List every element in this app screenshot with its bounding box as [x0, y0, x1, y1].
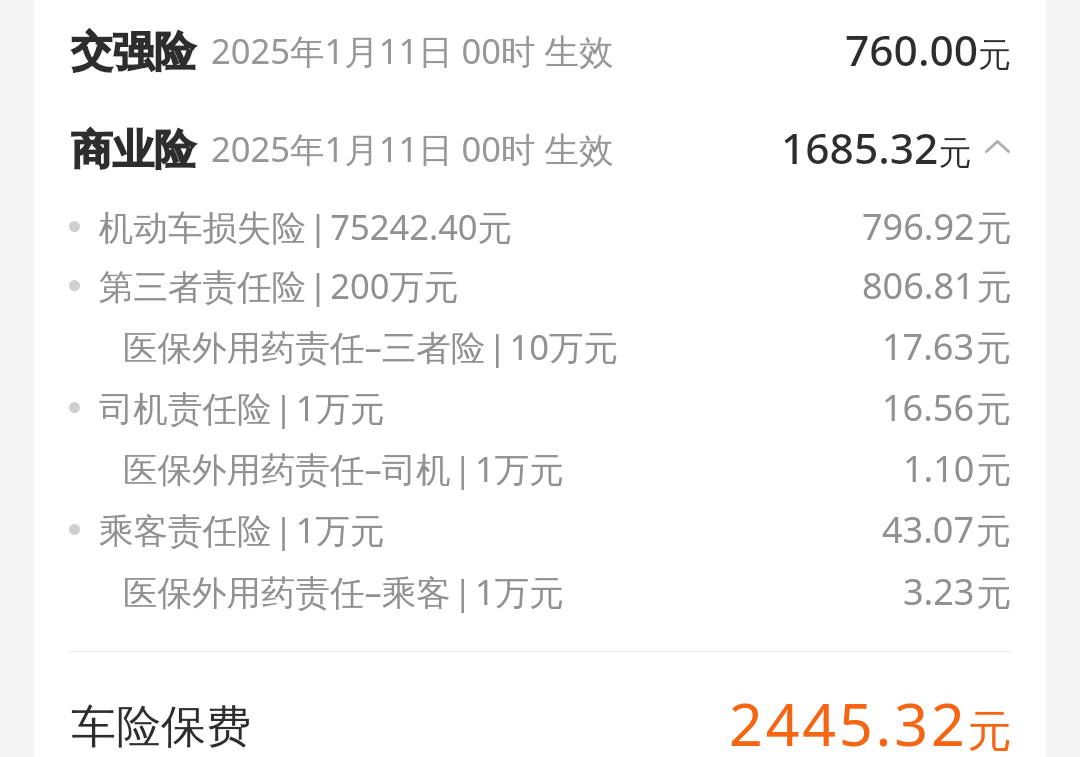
button[interactable]: 收起商业险明细 [985, 128, 1010, 168]
staticText: 第三者责任险 | 200万元 [99, 262, 459, 309]
button[interactable]: 乘客责任险 | 1万元 [34, 500, 1046, 558]
staticText: 17.63 元 [882, 322, 1012, 371]
button[interactable]: 车险保费 [34, 683, 1046, 757]
staticText: 医保外用药责任–司机 | 1万元 [123, 445, 564, 492]
staticText: 医保外用药责任–三者险 | 10万元 [123, 323, 618, 370]
staticText: 1685.32元 [781, 119, 972, 177]
staticText: 3.23 元 [903, 567, 1012, 616]
button[interactable]: 医保外用药责任–三者险 | 10万元 [34, 317, 1046, 375]
button[interactable]: 交强险 [34, 1, 1046, 99]
staticText: 806.81 元 [862, 261, 1012, 310]
button[interactable]: 医保外用药责任–司机 | 1万元 [34, 439, 1046, 497]
button[interactable]: 司机责任险 | 1万元 [34, 378, 1046, 436]
staticText: 医保外用药责任–乘客 | 1万元 [123, 568, 564, 615]
staticText: 16.56 元 [882, 383, 1012, 432]
button[interactable]: 商业险 [34, 99, 1046, 197]
staticText: 1.10 元 [903, 444, 1012, 493]
staticText: 乘客责任险 | 1万元 [99, 506, 385, 553]
staticText: 2025年1月11日 00时 生效 [211, 27, 614, 74]
staticText: 司机责任险 | 1万元 [99, 384, 385, 431]
staticText: 2445.32元 [729, 683, 1012, 757]
staticText: 车险保费 [71, 699, 251, 756]
staticText: 43.07 元 [882, 505, 1012, 554]
staticText: 机动车损失险 | 75242.40元 [99, 203, 513, 250]
button[interactable]: 第三者责任险 | 200万元 [34, 256, 1046, 314]
staticText: 796.92 元 [862, 202, 1012, 251]
staticText: 交强险 [71, 26, 196, 78]
staticText: 2025年1月11日 00时 生效 [211, 125, 614, 172]
button[interactable]: 机动车损失险 | 75242.40元 [34, 197, 1046, 255]
button[interactable]: 医保外用药责任–乘客 | 1万元 [34, 562, 1046, 620]
staticText: 760.00元 [845, 21, 1012, 79]
staticText: 商业险 [71, 124, 196, 176]
